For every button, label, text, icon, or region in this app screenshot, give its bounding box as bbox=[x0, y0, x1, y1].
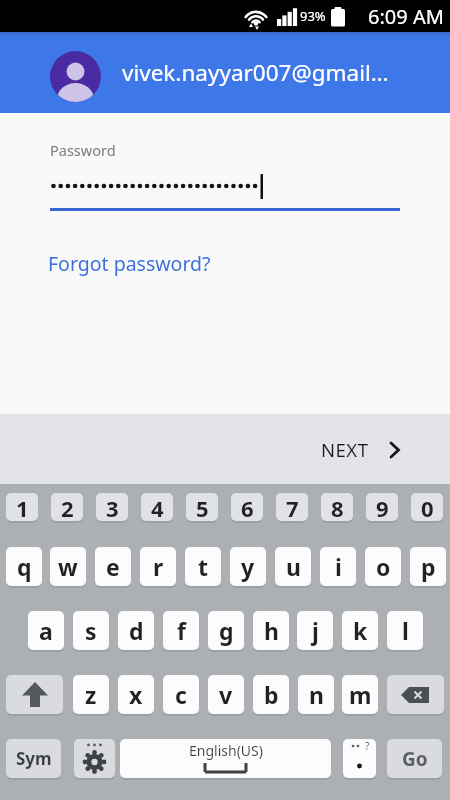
staticText: 3 bbox=[106, 493, 119, 521]
staticText: u bbox=[286, 551, 301, 582]
staticText: 7 bbox=[286, 493, 299, 521]
staticText: e bbox=[106, 551, 120, 582]
button[interactable]: 9 bbox=[366, 493, 398, 521]
staticText: p bbox=[421, 551, 436, 582]
button[interactable]: b bbox=[253, 675, 289, 714]
button[interactable]: c bbox=[163, 675, 199, 714]
staticText: y bbox=[241, 551, 255, 582]
button[interactable]: 5 bbox=[186, 493, 218, 521]
button[interactable]: l bbox=[387, 611, 423, 650]
button[interactable]: r bbox=[140, 547, 176, 586]
button[interactable]: 0 bbox=[411, 493, 443, 521]
staticText: 1 bbox=[16, 493, 29, 521]
button[interactable]: z bbox=[73, 675, 109, 714]
button[interactable]: t bbox=[185, 547, 221, 586]
staticText: n bbox=[309, 679, 324, 710]
staticText: z bbox=[85, 679, 97, 710]
button[interactable]: 1 bbox=[6, 493, 38, 521]
button[interactable]: i bbox=[320, 547, 356, 586]
button[interactable]: Forgot password? bbox=[48, 250, 211, 277]
button[interactable]: NEXT bbox=[321, 437, 403, 462]
staticText: i bbox=[335, 551, 342, 582]
button[interactable]: h bbox=[253, 611, 289, 650]
button[interactable]: 2 bbox=[51, 493, 83, 521]
button[interactable]: s bbox=[73, 611, 109, 650]
staticText: Go bbox=[402, 746, 428, 772]
button[interactable]: y bbox=[230, 547, 266, 586]
button[interactable]: m bbox=[342, 675, 378, 714]
staticText: x bbox=[129, 679, 143, 710]
button[interactable]: n bbox=[298, 675, 334, 714]
staticText: g bbox=[219, 615, 234, 646]
staticText: 6:09 AM bbox=[368, 3, 444, 30]
staticText: c bbox=[175, 679, 187, 710]
staticText: k bbox=[353, 615, 368, 646]
button[interactable]: Sym bbox=[6, 739, 61, 778]
staticText: f bbox=[177, 615, 186, 646]
staticText: r bbox=[153, 551, 164, 582]
staticText: o bbox=[376, 551, 391, 582]
button[interactable]: g bbox=[208, 611, 244, 650]
button[interactable]: w bbox=[50, 547, 86, 586]
staticText: s bbox=[85, 615, 97, 646]
staticText: Sym bbox=[16, 747, 52, 770]
button[interactable]: v bbox=[208, 675, 244, 714]
staticText: v bbox=[219, 679, 233, 710]
staticText: Forgot password? bbox=[48, 250, 211, 277]
button[interactable]: ? bbox=[343, 739, 376, 778]
button[interactable]: u bbox=[275, 547, 311, 586]
staticText: ? bbox=[365, 739, 370, 753]
button[interactable] bbox=[50, 51, 101, 102]
staticText: 2 bbox=[61, 493, 74, 521]
button[interactable]: k bbox=[342, 611, 378, 650]
button[interactable]: 6 bbox=[231, 493, 263, 521]
staticText: h bbox=[264, 615, 279, 646]
staticText: m bbox=[349, 679, 372, 710]
button[interactable]: 7 bbox=[276, 493, 308, 521]
staticText: w bbox=[58, 551, 78, 582]
button[interactable]: Go bbox=[387, 739, 442, 778]
button[interactable]: English(US) bbox=[120, 739, 331, 778]
staticText: 93% bbox=[300, 7, 326, 25]
button[interactable]: j bbox=[297, 611, 333, 650]
staticText: 5 bbox=[196, 493, 209, 521]
button[interactable] bbox=[74, 739, 115, 778]
staticText: t bbox=[198, 551, 208, 582]
button[interactable]: a bbox=[28, 611, 64, 650]
button[interactable]: d bbox=[118, 611, 154, 650]
button[interactable]: e bbox=[95, 547, 131, 586]
staticText: q bbox=[17, 551, 32, 582]
staticText: d bbox=[129, 615, 144, 646]
staticText: a bbox=[39, 615, 53, 646]
button[interactable]: 4 bbox=[141, 493, 173, 521]
button[interactable] bbox=[387, 675, 444, 714]
staticText: b bbox=[264, 679, 279, 710]
button[interactable] bbox=[6, 675, 63, 714]
staticText: j bbox=[312, 615, 319, 646]
button[interactable]: p bbox=[410, 547, 446, 586]
staticText: vivek.nayyar007@gmail… bbox=[122, 57, 389, 88]
button[interactable]: q bbox=[6, 547, 42, 586]
button[interactable]: 8 bbox=[321, 493, 353, 521]
staticText: Password bbox=[50, 140, 116, 160]
staticText: English(US) bbox=[189, 741, 263, 760]
staticText: 9 bbox=[376, 493, 389, 521]
staticText: 8 bbox=[331, 493, 344, 521]
staticText: 0 bbox=[421, 493, 434, 521]
staticText: 4 bbox=[151, 493, 164, 521]
staticText: 6 bbox=[241, 493, 254, 521]
staticText: l bbox=[402, 615, 409, 646]
button[interactable]: x bbox=[118, 675, 154, 714]
staticText: NEXT bbox=[321, 437, 369, 462]
button[interactable]: o bbox=[365, 547, 401, 586]
button[interactable]: f bbox=[163, 611, 199, 650]
button[interactable]: 3 bbox=[96, 493, 128, 521]
